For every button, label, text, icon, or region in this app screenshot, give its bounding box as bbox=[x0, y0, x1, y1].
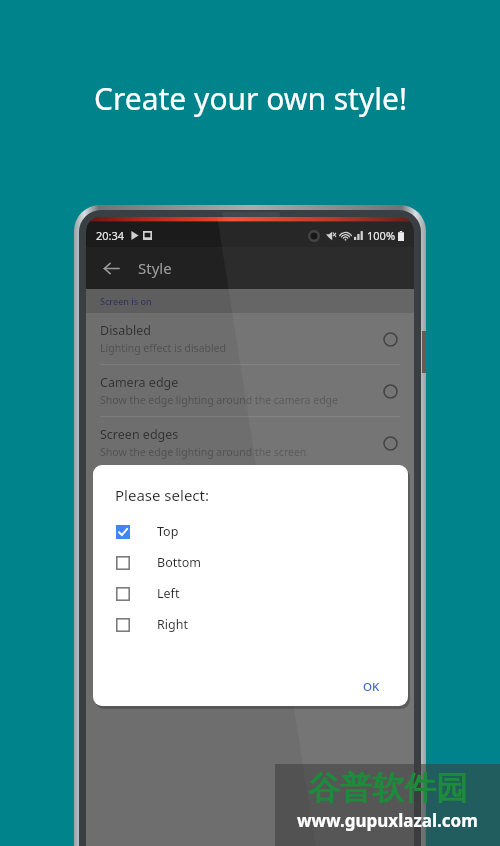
staticText: 100% bbox=[367, 228, 396, 243]
staticText: Fingerprint sensor bbox=[100, 582, 209, 599]
button[interactable]: Right bbox=[115, 616, 392, 633]
staticText: Top bbox=[157, 523, 179, 540]
staticText: Show a "LED" dot in the statusbar bbox=[100, 549, 266, 563]
staticText: Lighting effect is disabled bbox=[100, 341, 227, 355]
staticText: 20:34 bbox=[96, 228, 125, 243]
staticText: Show the edge lighting around the screen bbox=[100, 445, 307, 459]
staticText: LED dot bbox=[100, 530, 146, 547]
staticText: Right bbox=[157, 616, 188, 633]
staticText: www.gupuxlazal.com bbox=[297, 809, 478, 832]
staticText: Create your own style! bbox=[94, 78, 407, 119]
button[interactable]: Screen border bbox=[86, 469, 414, 520]
staticText: Bottom bbox=[157, 554, 201, 571]
button[interactable]: OK bbox=[351, 672, 392, 702]
staticText: Left bbox=[157, 585, 180, 602]
staticText: OK bbox=[363, 679, 380, 695]
staticText: Show a lighting effect around the finger… bbox=[100, 601, 356, 628]
button[interactable]: Camera edge bbox=[86, 365, 414, 416]
staticText: Show the edge lighting around the camera… bbox=[100, 393, 338, 407]
button[interactable]: LED dot bbox=[86, 521, 414, 572]
button[interactable]: Top bbox=[115, 523, 392, 540]
staticText: Disabled bbox=[100, 322, 152, 339]
staticText: 谷普软件园 bbox=[308, 768, 468, 808]
staticText: Screen border bbox=[100, 478, 183, 495]
button[interactable]: Screen edges bbox=[86, 417, 414, 468]
staticText: Screen is on bbox=[100, 295, 152, 307]
staticText: Screen edges bbox=[100, 426, 179, 443]
staticText: Please select: bbox=[115, 485, 209, 505]
button[interactable]: Back bbox=[94, 251, 128, 285]
button[interactable]: Left bbox=[115, 585, 392, 602]
button[interactable]: Disabled bbox=[86, 313, 414, 364]
staticText: Style bbox=[138, 258, 172, 278]
button[interactable]: Bottom bbox=[115, 554, 392, 571]
staticText: Camera edge bbox=[100, 374, 179, 391]
button[interactable]: Fingerprint sensor bbox=[86, 573, 414, 637]
staticText: Draw a border around the screen bbox=[100, 497, 264, 511]
